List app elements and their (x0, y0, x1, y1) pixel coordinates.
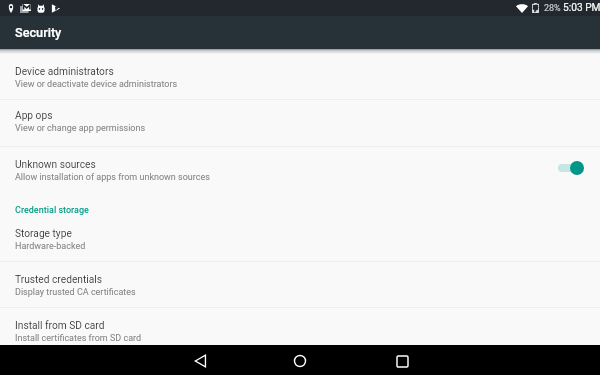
button[interactable]: Recent apps (380, 345, 424, 375)
staticText: Install certificates from SD card (15, 333, 142, 344)
staticText: App ops (15, 110, 53, 122)
button[interactable]: Unknown sources toggle (558, 144, 584, 191)
button[interactable]: Home (278, 345, 322, 375)
button[interactable]: Install from SD card (0, 308, 600, 345)
button[interactable]: Storage type (0, 216, 600, 261)
staticText: Device administrators (15, 66, 114, 78)
staticText: Hardware-backed (15, 241, 86, 252)
button[interactable]: Back (178, 345, 222, 375)
staticText: Unknown sources (15, 159, 96, 171)
button[interactable]: App ops (0, 100, 600, 146)
staticText: Trusted credentials (15, 274, 102, 286)
button[interactable]: Device administrators (0, 54, 600, 99)
staticText: Allow installation of apps from unknown … (15, 172, 210, 183)
staticText: Display trusted CA certificates (15, 287, 136, 298)
staticText: View or deactivate device administrators (15, 79, 178, 90)
staticText: Install from SD card (15, 320, 105, 332)
button[interactable]: Unknown sources (0, 147, 600, 194)
staticText: 5:03 PM (563, 2, 600, 14)
staticText: Security (15, 25, 62, 40)
staticText: View or change app permissions (15, 123, 146, 134)
button[interactable]: Trusted credentials (0, 262, 600, 307)
staticText: 28% (544, 3, 561, 14)
staticText: Credential storage (15, 205, 89, 216)
staticText: Storage type (15, 228, 72, 240)
